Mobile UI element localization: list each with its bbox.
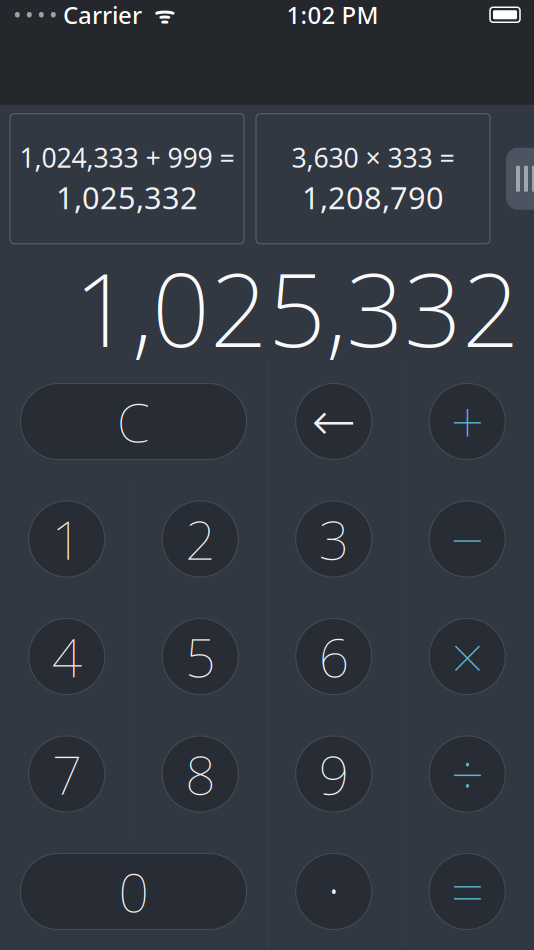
button[interactable]: Subtract (400, 480, 534, 598)
staticText: 3,630 × 333 = (291, 140, 454, 175)
staticText: 1 (52, 504, 82, 574)
staticText: 5 (185, 621, 215, 692)
staticText: 6 (319, 621, 349, 692)
staticText: 1,024,333 + 999 = (19, 140, 234, 175)
button[interactable]: History (506, 148, 534, 210)
button[interactable]: Equals (400, 833, 534, 950)
staticText: • (327, 868, 340, 914)
staticText: 1:02 PM (286, 0, 378, 31)
staticText: Carrier (57, 0, 142, 31)
staticText: 4 (52, 621, 82, 692)
staticText: = (451, 852, 484, 930)
staticText: 2 (185, 504, 215, 574)
button[interactable]: 1,024,333 + 999 = (10, 114, 244, 244)
button[interactable]: 3 (267, 480, 400, 598)
button[interactable]: Decimal point (267, 833, 400, 950)
staticText: ÷ (451, 735, 484, 813)
staticText: 0 (118, 856, 148, 927)
staticText: 8 (185, 739, 215, 809)
button[interactable]: 4 (0, 598, 133, 715)
staticText: + (451, 382, 484, 460)
button[interactable]: 3,630 × 333 = (256, 114, 490, 244)
staticText: 9 (319, 739, 349, 809)
button[interactable]: 2 (133, 480, 267, 598)
staticText: 1,208,790 (302, 177, 444, 218)
button[interactable]: 5 (133, 598, 267, 715)
staticText: 3 (319, 504, 349, 574)
staticText: 7 (52, 739, 82, 809)
staticText: × (451, 617, 484, 695)
button[interactable]: 6 (267, 598, 400, 715)
staticText: 1,025,332 (74, 240, 520, 375)
button[interactable]: 8 (133, 715, 267, 833)
staticText: ᯤ (142, 0, 175, 30)
button[interactable]: Clear (0, 363, 267, 480)
button[interactable]: 1 (0, 480, 133, 598)
button[interactable]: 0 (0, 833, 267, 950)
button[interactable]: Divide (400, 715, 534, 833)
staticText: ← (311, 391, 356, 452)
button[interactable]: Multiply (400, 598, 534, 715)
staticText: − (451, 500, 484, 578)
staticText: • • • • (14, 3, 57, 26)
button[interactable]: Add (400, 363, 534, 480)
staticText: C (117, 386, 150, 457)
button[interactable]: 7 (0, 715, 133, 833)
button[interactable]: Backspace (267, 363, 400, 480)
staticText: 1,025,332 (56, 177, 198, 218)
button[interactable]: 9 (267, 715, 400, 833)
